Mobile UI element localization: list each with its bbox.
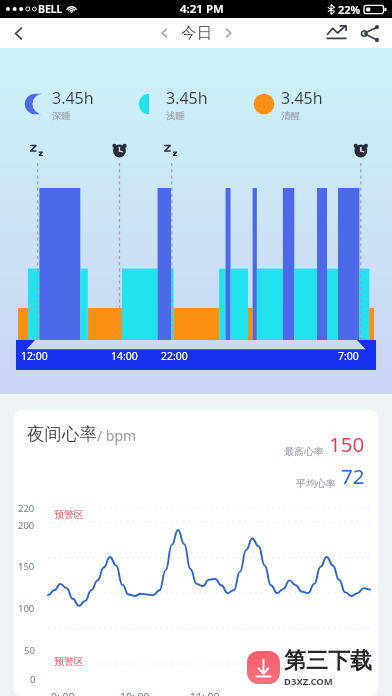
button[interactable]: 夜间心率 (14, 410, 378, 696)
staticText: 最高心率 (284, 445, 324, 458)
staticText: 夜间心率 (27, 423, 97, 445)
staticText: 72 (341, 462, 365, 490)
staticText: 第三下载 (284, 647, 372, 675)
button[interactable]: Back (0, 18, 36, 48)
button[interactable]: 3.45h (138, 82, 253, 126)
button[interactable]: Trends (321, 18, 354, 48)
staticText: 今日 (181, 23, 212, 43)
staticText: 平均心率 (296, 477, 336, 490)
staticText: / bpm (97, 426, 137, 445)
staticText: 10: 00 (120, 690, 150, 696)
button[interactable]: 今日 (177, 23, 216, 43)
staticText: 150 (329, 430, 365, 458)
staticText: 深睡 (52, 110, 71, 122)
staticText: 0 (30, 673, 36, 686)
staticText: 清醒 (281, 110, 300, 122)
staticText: 7:00 (338, 349, 359, 363)
staticText: 浅睡 (166, 110, 185, 122)
staticText: D3XZ.COM (284, 675, 333, 688)
staticText: 220 (18, 502, 35, 515)
button[interactable]: Previous day (151, 19, 177, 47)
staticText: 3.45h (166, 87, 208, 109)
staticText: 200 (18, 519, 35, 532)
staticText: 3.45h (281, 87, 323, 109)
staticText: 22% (338, 2, 361, 17)
staticText: 50 (24, 644, 35, 657)
staticText: 9: 00 (51, 690, 75, 696)
button[interactable]: Share (354, 18, 387, 48)
staticText: BELL (38, 2, 63, 16)
button[interactable]: 3.45h (253, 82, 368, 126)
staticText: 预警区 (54, 655, 84, 668)
button[interactable]: 3.45h (24, 82, 138, 126)
staticText: 11: 00 (190, 690, 220, 696)
staticText: 3.45h (52, 87, 94, 109)
button[interactable]: Next day (216, 19, 242, 47)
staticText: 12:00 (21, 349, 48, 363)
staticText: 4:21 PM (180, 1, 224, 17)
staticText: 预警区 (54, 508, 84, 521)
staticText: 100 (18, 602, 35, 615)
staticText: 14:00 (111, 349, 138, 363)
staticText: 22:00 (161, 349, 188, 363)
staticText: 150 (18, 560, 35, 573)
